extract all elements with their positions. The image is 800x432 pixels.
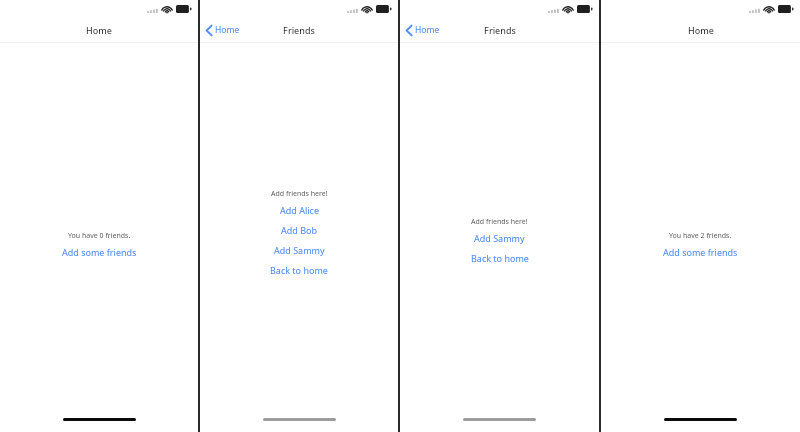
- staticText: Add some friends: [62, 246, 137, 258]
- button[interactable]: Back to Home: [403, 20, 443, 40]
- staticText: Home: [86, 24, 112, 36]
- staticText: Home: [688, 24, 714, 36]
- staticText: You have 0 friends.: [68, 231, 131, 241]
- button[interactable]: Add some friends: [655, 242, 746, 262]
- button[interactable]: Add some friends: [54, 242, 145, 262]
- staticText: Add Sammy: [274, 244, 325, 256]
- button[interactable]: Back to Home: [203, 20, 243, 40]
- staticText: Add friends here!: [271, 189, 328, 199]
- staticText: Add friends here!: [471, 217, 528, 227]
- staticText: You have 2 friends.: [669, 231, 732, 241]
- button[interactable]: Add Sammy: [266, 240, 333, 260]
- button[interactable]: Add Alice: [272, 200, 327, 220]
- staticText: Home: [215, 24, 240, 36]
- staticText: Back to home: [471, 252, 529, 264]
- staticText: Add Bob: [281, 224, 317, 236]
- button[interactable]: Add Sammy: [466, 228, 533, 248]
- staticText: Add some friends: [663, 246, 738, 258]
- staticText: Add Sammy: [474, 232, 525, 244]
- staticText: Friends: [283, 24, 315, 36]
- staticText: Add Alice: [280, 204, 319, 216]
- button[interactable]: Back to home: [262, 260, 336, 280]
- button[interactable]: Add Bob: [273, 220, 325, 240]
- button[interactable]: Back to home: [463, 248, 537, 268]
- staticText: Home: [415, 24, 440, 36]
- staticText: Back to home: [270, 264, 328, 276]
- staticText: Friends: [484, 24, 516, 36]
